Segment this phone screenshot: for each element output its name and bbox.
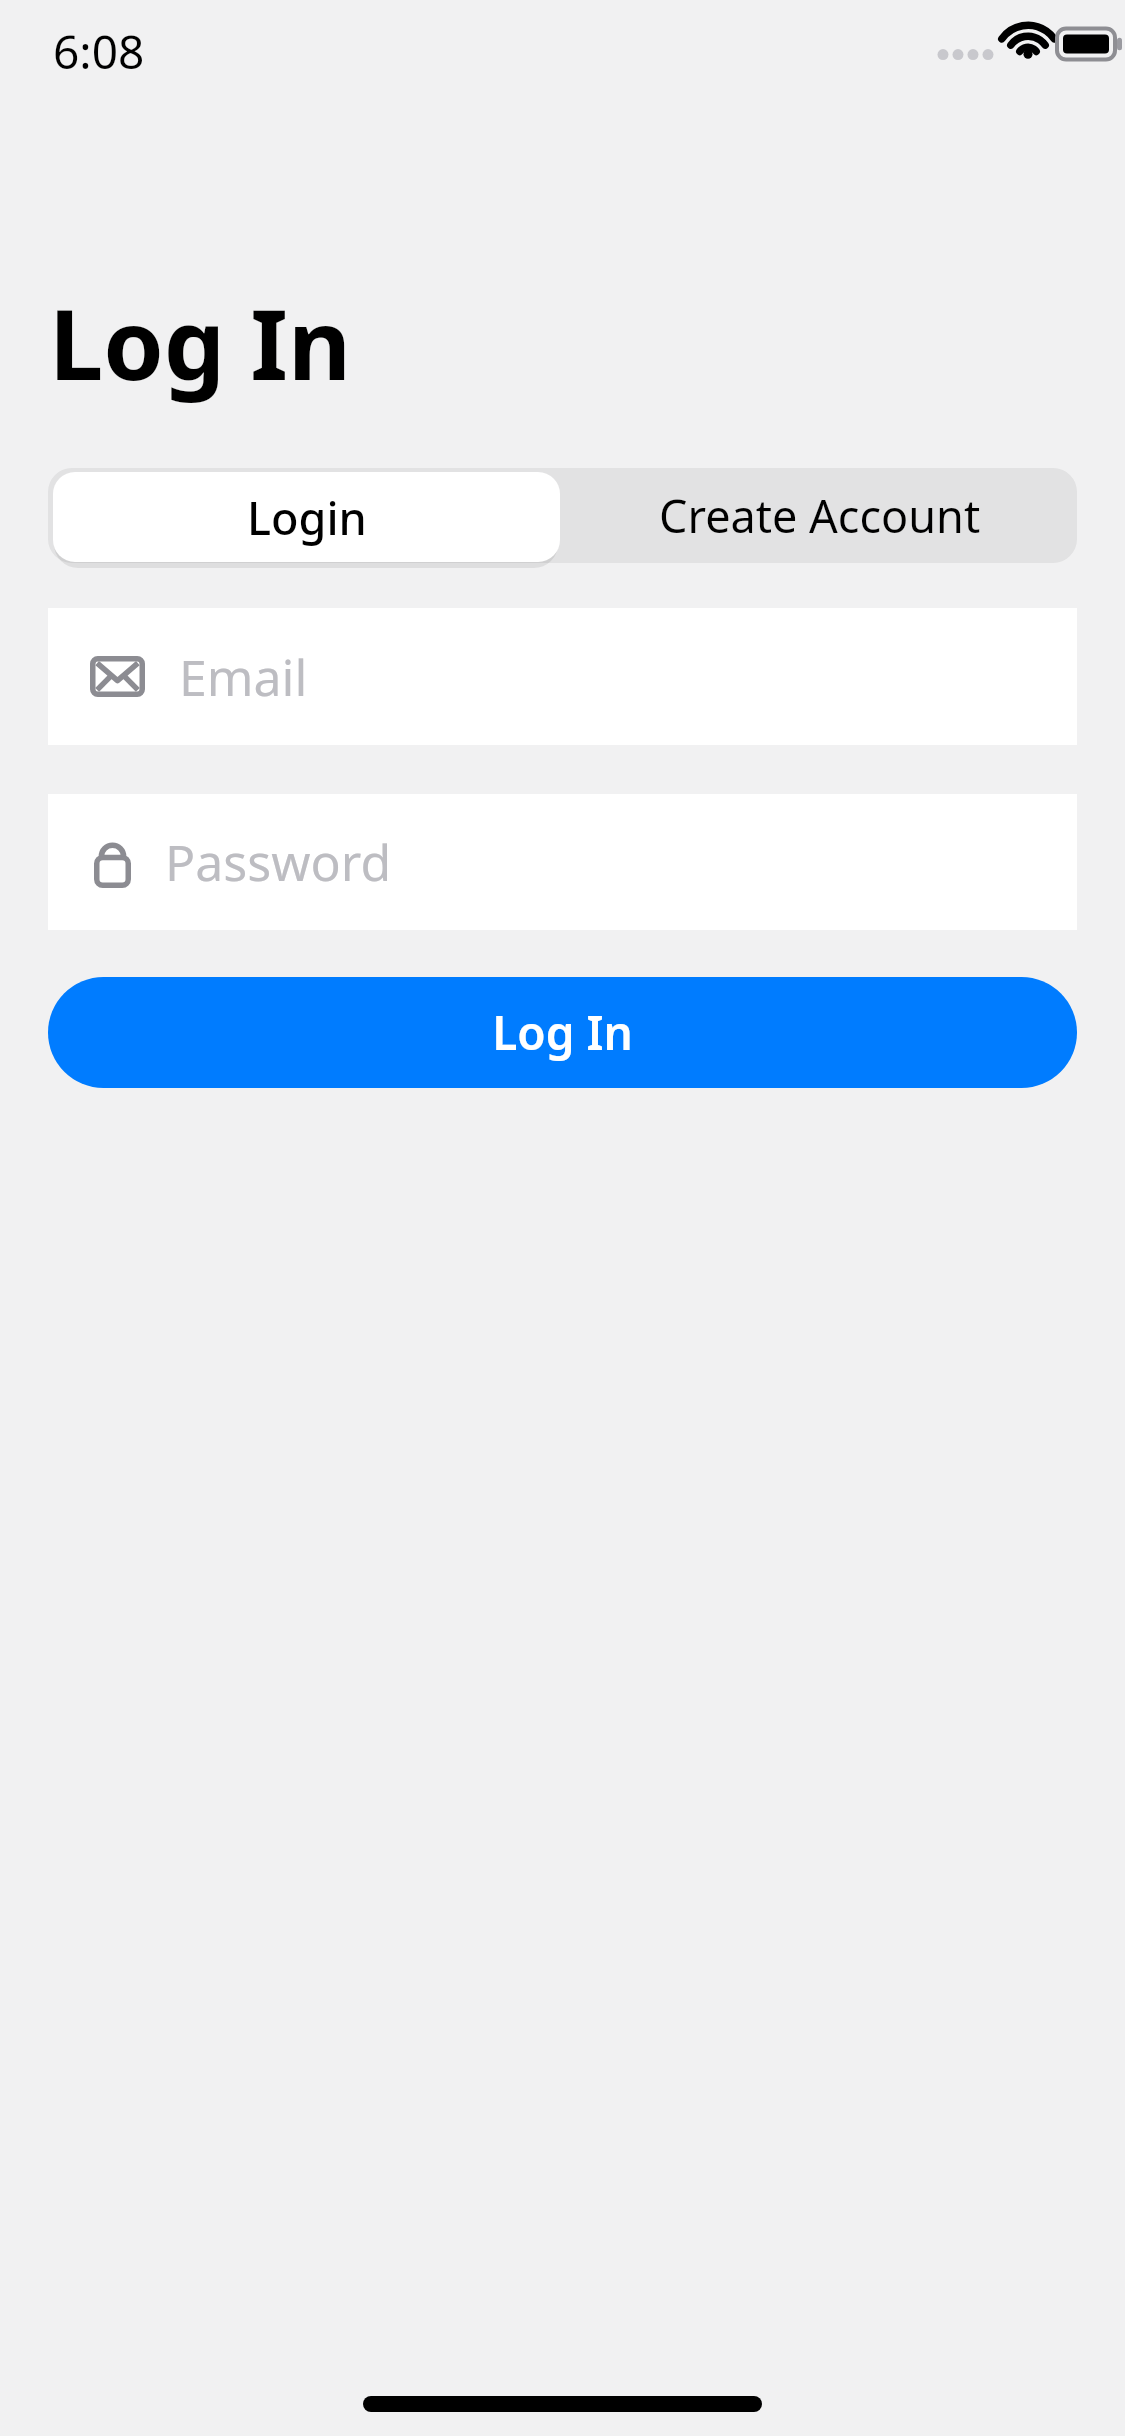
staticText: Log In xyxy=(492,1001,633,1064)
other: Email xyxy=(90,656,145,697)
button[interactable]: Log In xyxy=(48,977,1077,1088)
other: Password xyxy=(94,837,131,888)
staticText: Login xyxy=(247,487,367,548)
button[interactable]: Email xyxy=(48,608,1077,745)
button[interactable]: Login xyxy=(53,472,560,562)
staticText: Password xyxy=(165,828,392,896)
staticText: Create Account xyxy=(659,485,981,546)
staticText: 6:08 xyxy=(53,20,145,83)
staticText: Log In xyxy=(49,276,352,408)
button[interactable]: Create Account xyxy=(562,468,1077,563)
button[interactable]: Password xyxy=(48,794,1077,930)
button[interactable] xyxy=(48,468,562,563)
staticText: Email xyxy=(179,643,308,711)
